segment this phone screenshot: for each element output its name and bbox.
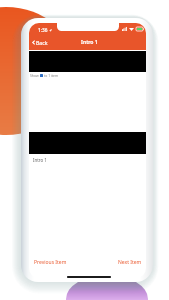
button[interactable]: Next Item — [114, 256, 146, 269]
staticText: Intro 1 — [33, 157, 47, 163]
staticText: Intro 1 — [81, 39, 98, 46]
staticText: Show — [30, 73, 39, 78]
staticText: 1:36 — [38, 27, 48, 34]
button[interactable]: Previous Item — [29, 256, 71, 269]
button[interactable]: Back — [30, 37, 51, 48]
staticText: Back — [36, 39, 48, 46]
staticText: to 1 item — [44, 73, 59, 78]
staticText: Next Item — [118, 259, 142, 266]
staticText: Previous Item — [34, 259, 67, 266]
